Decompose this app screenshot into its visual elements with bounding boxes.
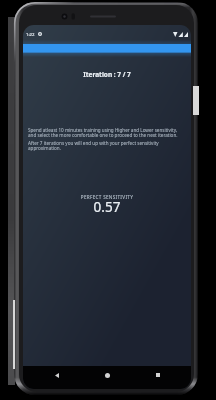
button[interactable]: Home [90, 366, 124, 384]
button[interactable]: Back [40, 366, 74, 384]
staticText: 0.57 [23, 198, 191, 216]
staticText: Iteration : 7 / 7 [23, 70, 191, 79]
staticText: Spend atleast 10 minutes training using … [28, 127, 180, 138]
button[interactable]: Recent apps [141, 366, 175, 384]
staticText: After 7 iterations you will end up with … [28, 140, 180, 151]
staticText: PERFECT SENSITIVITY [23, 194, 191, 200]
staticText: 1:22 [26, 31, 35, 37]
